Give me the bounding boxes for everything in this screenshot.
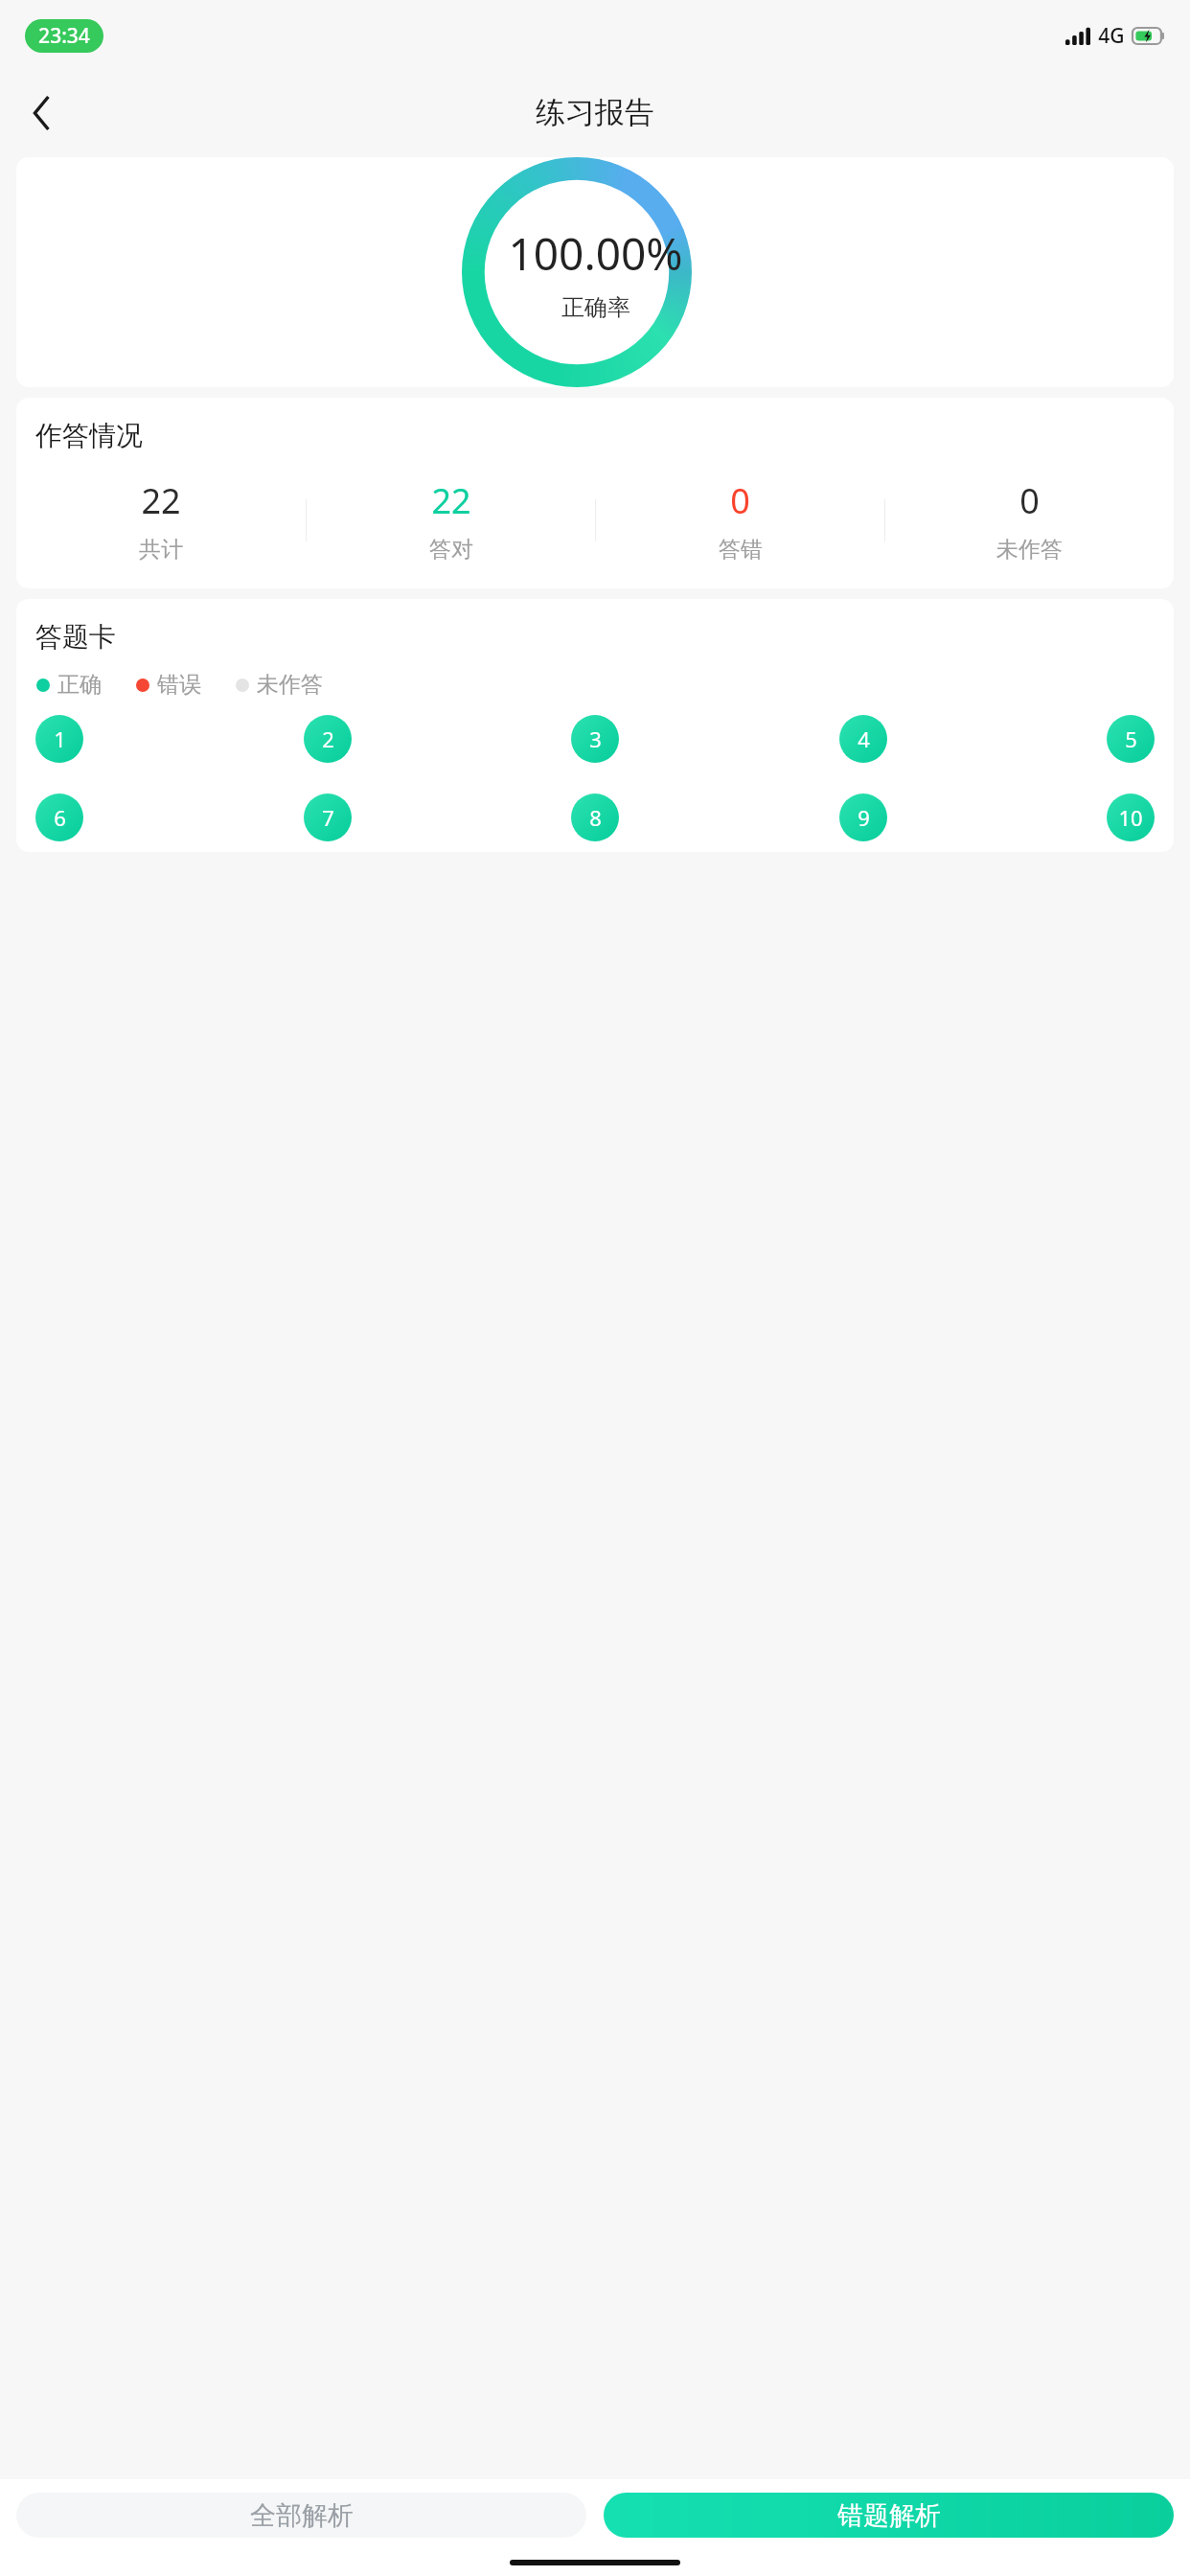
button[interactable]: 8 [571,793,619,841]
button[interactable]: 0 [885,477,1174,563]
staticText: 答错 [719,536,763,563]
staticText: 22 [431,477,471,524]
button[interactable]: 2 [304,715,352,763]
staticText: 7 [322,803,334,832]
staticText: 4G [1098,22,1125,50]
button[interactable]: 22 [16,477,306,563]
staticText: 1 [54,724,66,753]
button[interactable]: 错题解析 [604,2493,1174,2538]
staticText: 9 [858,803,870,832]
staticText: 100.00% [508,223,683,284]
button[interactable]: 7 [304,793,352,841]
staticText: 2 [322,724,334,753]
button[interactable]: 3 [571,715,619,763]
staticText: 答对 [429,536,473,563]
button[interactable]: 22 [307,477,595,563]
button[interactable]: 4 [839,715,887,763]
staticText: 错题解析 [837,2499,941,2532]
staticText: 答题卡 [35,620,116,654]
staticText: 4 [858,724,870,753]
button[interactable]: 10 [1107,793,1155,841]
staticText: 0 [730,477,750,524]
staticText: 6 [54,803,66,832]
staticText: 练习报告 [536,94,654,131]
staticText: 未作答 [996,536,1063,563]
staticText: 22 [141,477,181,524]
staticText: 正确 [57,671,102,699]
staticText: 错误 [157,671,201,699]
button[interactable]: 全部解析 [16,2493,586,2538]
staticText: 23:34 [38,22,90,50]
staticText: 5 [1125,724,1137,753]
button[interactable]: 5 [1107,715,1155,763]
staticText: 10 [1118,803,1143,832]
staticText: 共计 [139,536,183,563]
button[interactable]: 6 [35,793,83,841]
staticText: 未作答 [257,671,323,699]
staticText: 全部解析 [250,2499,354,2532]
button[interactable]: Back [15,86,69,140]
staticText: 8 [589,803,602,832]
staticText: 正确率 [561,293,630,322]
button[interactable]: 9 [839,793,887,841]
button[interactable]: 0 [596,477,884,563]
staticText: 作答情况 [35,419,143,452]
staticText: 0 [1019,477,1040,524]
staticText: 3 [589,724,602,753]
button[interactable]: 1 [35,715,83,763]
